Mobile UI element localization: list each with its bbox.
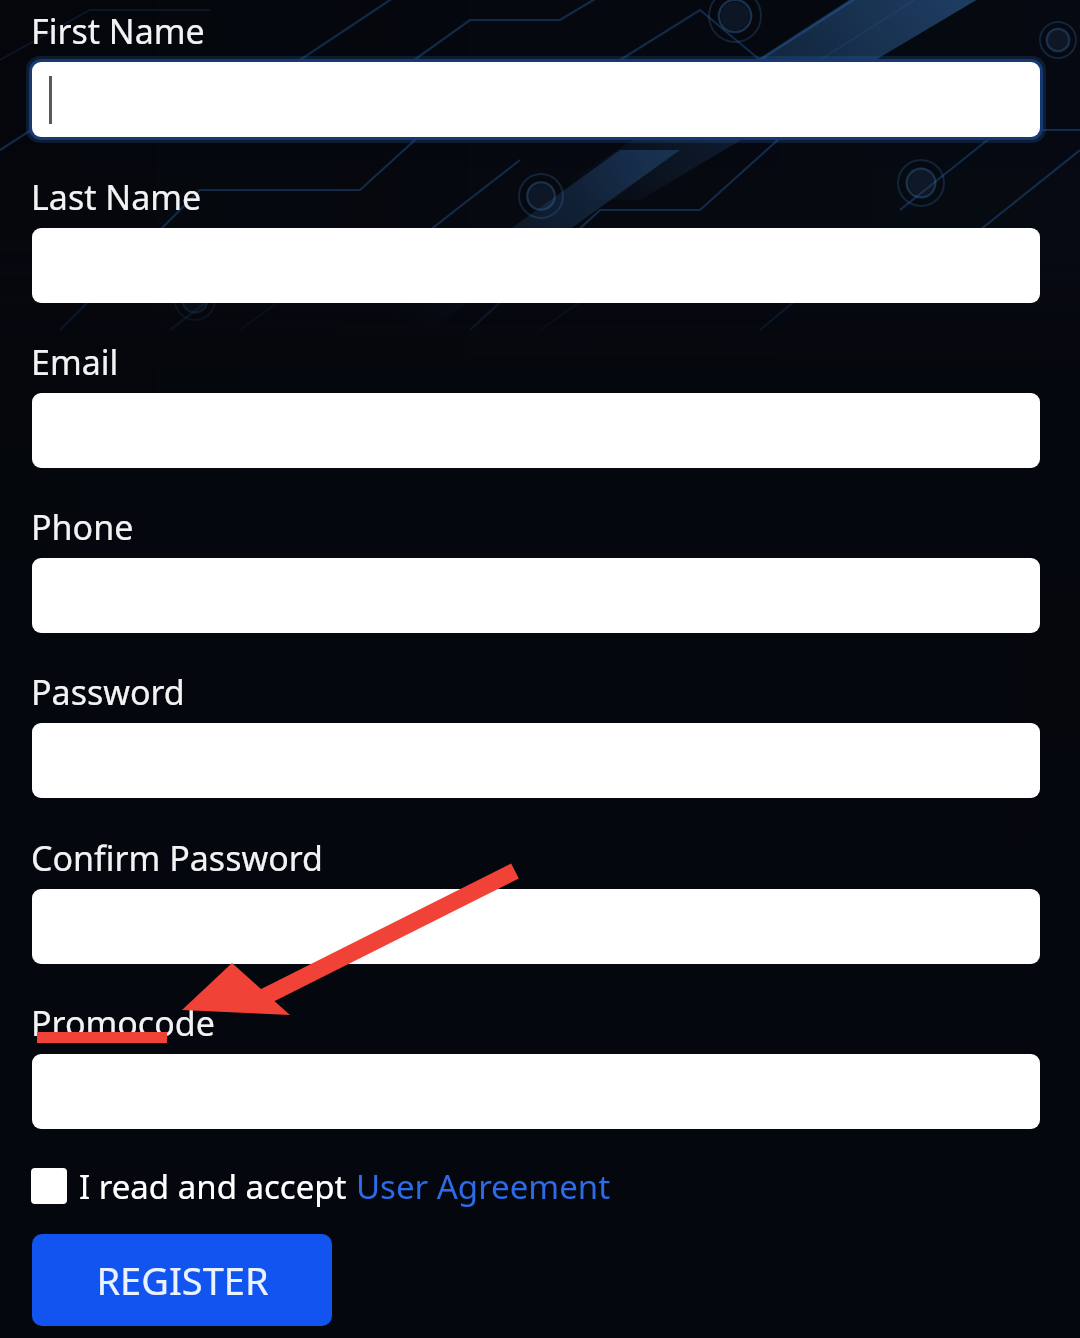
staticText: Password [31, 669, 185, 715]
button[interactable] [32, 62, 1040, 137]
button[interactable] [32, 723, 1040, 798]
staticText: Phone [31, 504, 134, 550]
staticText: Promocode [31, 1000, 215, 1046]
staticText: First Name [31, 8, 205, 54]
button[interactable] [32, 228, 1040, 303]
staticText: Last Name [31, 174, 202, 220]
button[interactable] [32, 889, 1040, 964]
staticText: I read and accept [79, 1164, 356, 1209]
button[interactable] [32, 558, 1040, 633]
staticText: User Agreement [356, 1164, 611, 1209]
button[interactable] [32, 1054, 1040, 1129]
button[interactable]: I read and accept [31, 1162, 611, 1210]
button[interactable]: REGISTER [32, 1234, 332, 1326]
staticText: Confirm Password [31, 835, 323, 881]
staticText: REGISTER [96, 1254, 269, 1306]
staticText: Email [31, 339, 119, 385]
button[interactable] [32, 393, 1040, 468]
